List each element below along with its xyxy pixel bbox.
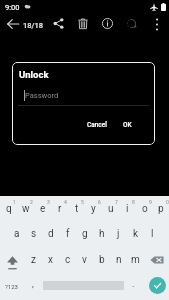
staticText: , bbox=[32, 279, 34, 290]
button[interactable]: 5 bbox=[68, 196, 85, 222]
button[interactable]: 4 bbox=[51, 196, 68, 222]
staticText: 9:00 bbox=[5, 3, 20, 12]
button[interactable]: Delete bbox=[75, 15, 91, 32]
button[interactable]: Back bbox=[4, 15, 22, 33]
button[interactable]: Info bbox=[99, 15, 116, 32]
button[interactable]: v bbox=[76, 248, 93, 274]
staticText: z bbox=[31, 254, 36, 266]
staticText: m bbox=[131, 254, 140, 266]
button[interactable]: ?123 bbox=[0, 274, 23, 300]
staticText: 0 bbox=[166, 199, 169, 205]
button[interactable]: Share bbox=[50, 15, 67, 32]
button[interactable]: Backspace bbox=[144, 248, 169, 274]
staticText: 1 bbox=[13, 199, 16, 205]
button[interactable]: . bbox=[124, 274, 143, 300]
staticText: c bbox=[65, 254, 71, 266]
staticText: f bbox=[66, 228, 70, 240]
button[interactable]: m bbox=[127, 248, 144, 274]
button[interactable]: g bbox=[76, 222, 93, 248]
staticText: d bbox=[48, 228, 54, 240]
button[interactable]: l bbox=[144, 222, 161, 248]
staticText: n bbox=[116, 254, 122, 266]
button[interactable]: h bbox=[93, 222, 110, 248]
button[interactable]: OK bbox=[119, 117, 136, 133]
staticText: v bbox=[82, 254, 87, 266]
staticText: j bbox=[117, 228, 120, 240]
button[interactable]: 3 bbox=[34, 196, 51, 222]
staticText: Password bbox=[25, 91, 59, 100]
button[interactable]: j bbox=[110, 222, 127, 248]
button[interactable]: b bbox=[93, 248, 110, 274]
button[interactable]: Enter bbox=[149, 277, 166, 294]
button[interactable]: f bbox=[59, 222, 76, 248]
button[interactable]: c bbox=[59, 248, 76, 274]
button[interactable]: 1 bbox=[0, 196, 17, 222]
staticText: y bbox=[91, 203, 96, 215]
staticText: q bbox=[6, 203, 12, 215]
button[interactable]: a bbox=[8, 222, 25, 248]
button[interactable]: 0 bbox=[153, 196, 169, 222]
staticText: t bbox=[75, 203, 79, 215]
button[interactable]: x bbox=[42, 248, 59, 274]
button[interactable]: More options bbox=[151, 15, 163, 34]
staticText: p bbox=[158, 203, 164, 215]
staticText: r bbox=[58, 203, 62, 215]
staticText: s bbox=[31, 228, 37, 240]
staticText: e bbox=[40, 203, 46, 215]
button[interactable]: Cancel bbox=[83, 117, 111, 133]
staticText: 6 bbox=[98, 199, 101, 205]
staticText: 3 bbox=[47, 199, 50, 205]
button[interactable]: 6 bbox=[85, 196, 102, 222]
staticText: a bbox=[14, 228, 20, 240]
staticText: g bbox=[82, 228, 88, 240]
button[interactable]: 18/18 bbox=[23, 21, 43, 30]
staticText: 7 bbox=[115, 199, 118, 205]
button[interactable]: s bbox=[25, 222, 42, 248]
staticText: Cancel bbox=[87, 121, 107, 129]
staticText: ?123 bbox=[5, 283, 18, 290]
staticText: b bbox=[99, 254, 105, 266]
staticText: k bbox=[133, 228, 139, 240]
staticText: . bbox=[132, 279, 135, 290]
button[interactable]: k bbox=[127, 222, 144, 248]
button[interactable]: Rotate bbox=[123, 15, 140, 32]
staticText: h bbox=[99, 228, 105, 240]
button[interactable]: 9 bbox=[136, 196, 153, 222]
staticText: u bbox=[108, 203, 114, 215]
staticText: 9 bbox=[149, 199, 152, 205]
staticText: l bbox=[151, 228, 154, 240]
staticText: i bbox=[126, 203, 129, 215]
staticText: OK bbox=[123, 121, 132, 129]
staticText: 5 bbox=[81, 199, 84, 205]
button[interactable]: 7 bbox=[102, 196, 119, 222]
staticText: w bbox=[22, 203, 30, 215]
button[interactable]: z bbox=[25, 248, 42, 274]
staticText: 8 bbox=[132, 199, 135, 205]
staticText: 4 bbox=[64, 199, 67, 205]
button[interactable]: 8 bbox=[119, 196, 136, 222]
button[interactable]: Password bbox=[18, 88, 149, 106]
button[interactable]: Shift bbox=[0, 248, 25, 274]
staticText: o bbox=[142, 203, 148, 215]
button[interactable]: 2 bbox=[17, 196, 34, 222]
staticText: 2 bbox=[30, 199, 33, 205]
staticText: x bbox=[48, 254, 53, 266]
button[interactable]: d bbox=[42, 222, 59, 248]
button[interactable]: n bbox=[110, 248, 127, 274]
button[interactable]: , bbox=[23, 274, 43, 300]
staticText: Unlock bbox=[19, 69, 49, 80]
